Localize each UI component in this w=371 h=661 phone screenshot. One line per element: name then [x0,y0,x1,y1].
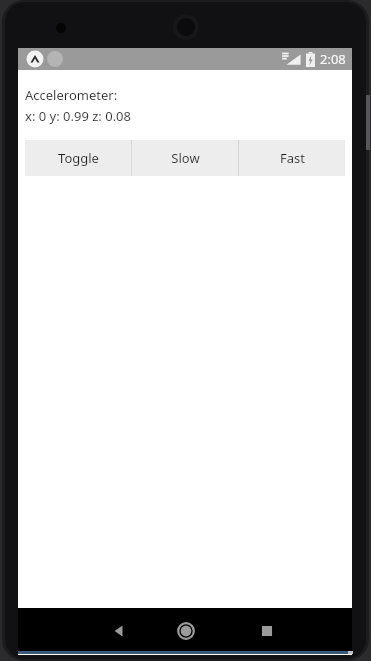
button[interactable]: Recent apps [233,608,301,653]
staticText: Fast [280,149,305,167]
staticText: x: 0 y: 0.99 z: 0.08 [25,107,131,125]
button[interactable]: Toggle [25,140,131,176]
button[interactable]: Fast [239,140,345,176]
staticText: Slow [171,149,200,167]
button[interactable]: Back [85,608,153,653]
staticText: Accelerometer: [25,86,118,104]
staticText: Toggle [58,149,99,167]
button[interactable]: Slow [132,140,238,176]
button[interactable]: Home [152,608,220,653]
staticText: 2:08 [320,50,346,68]
